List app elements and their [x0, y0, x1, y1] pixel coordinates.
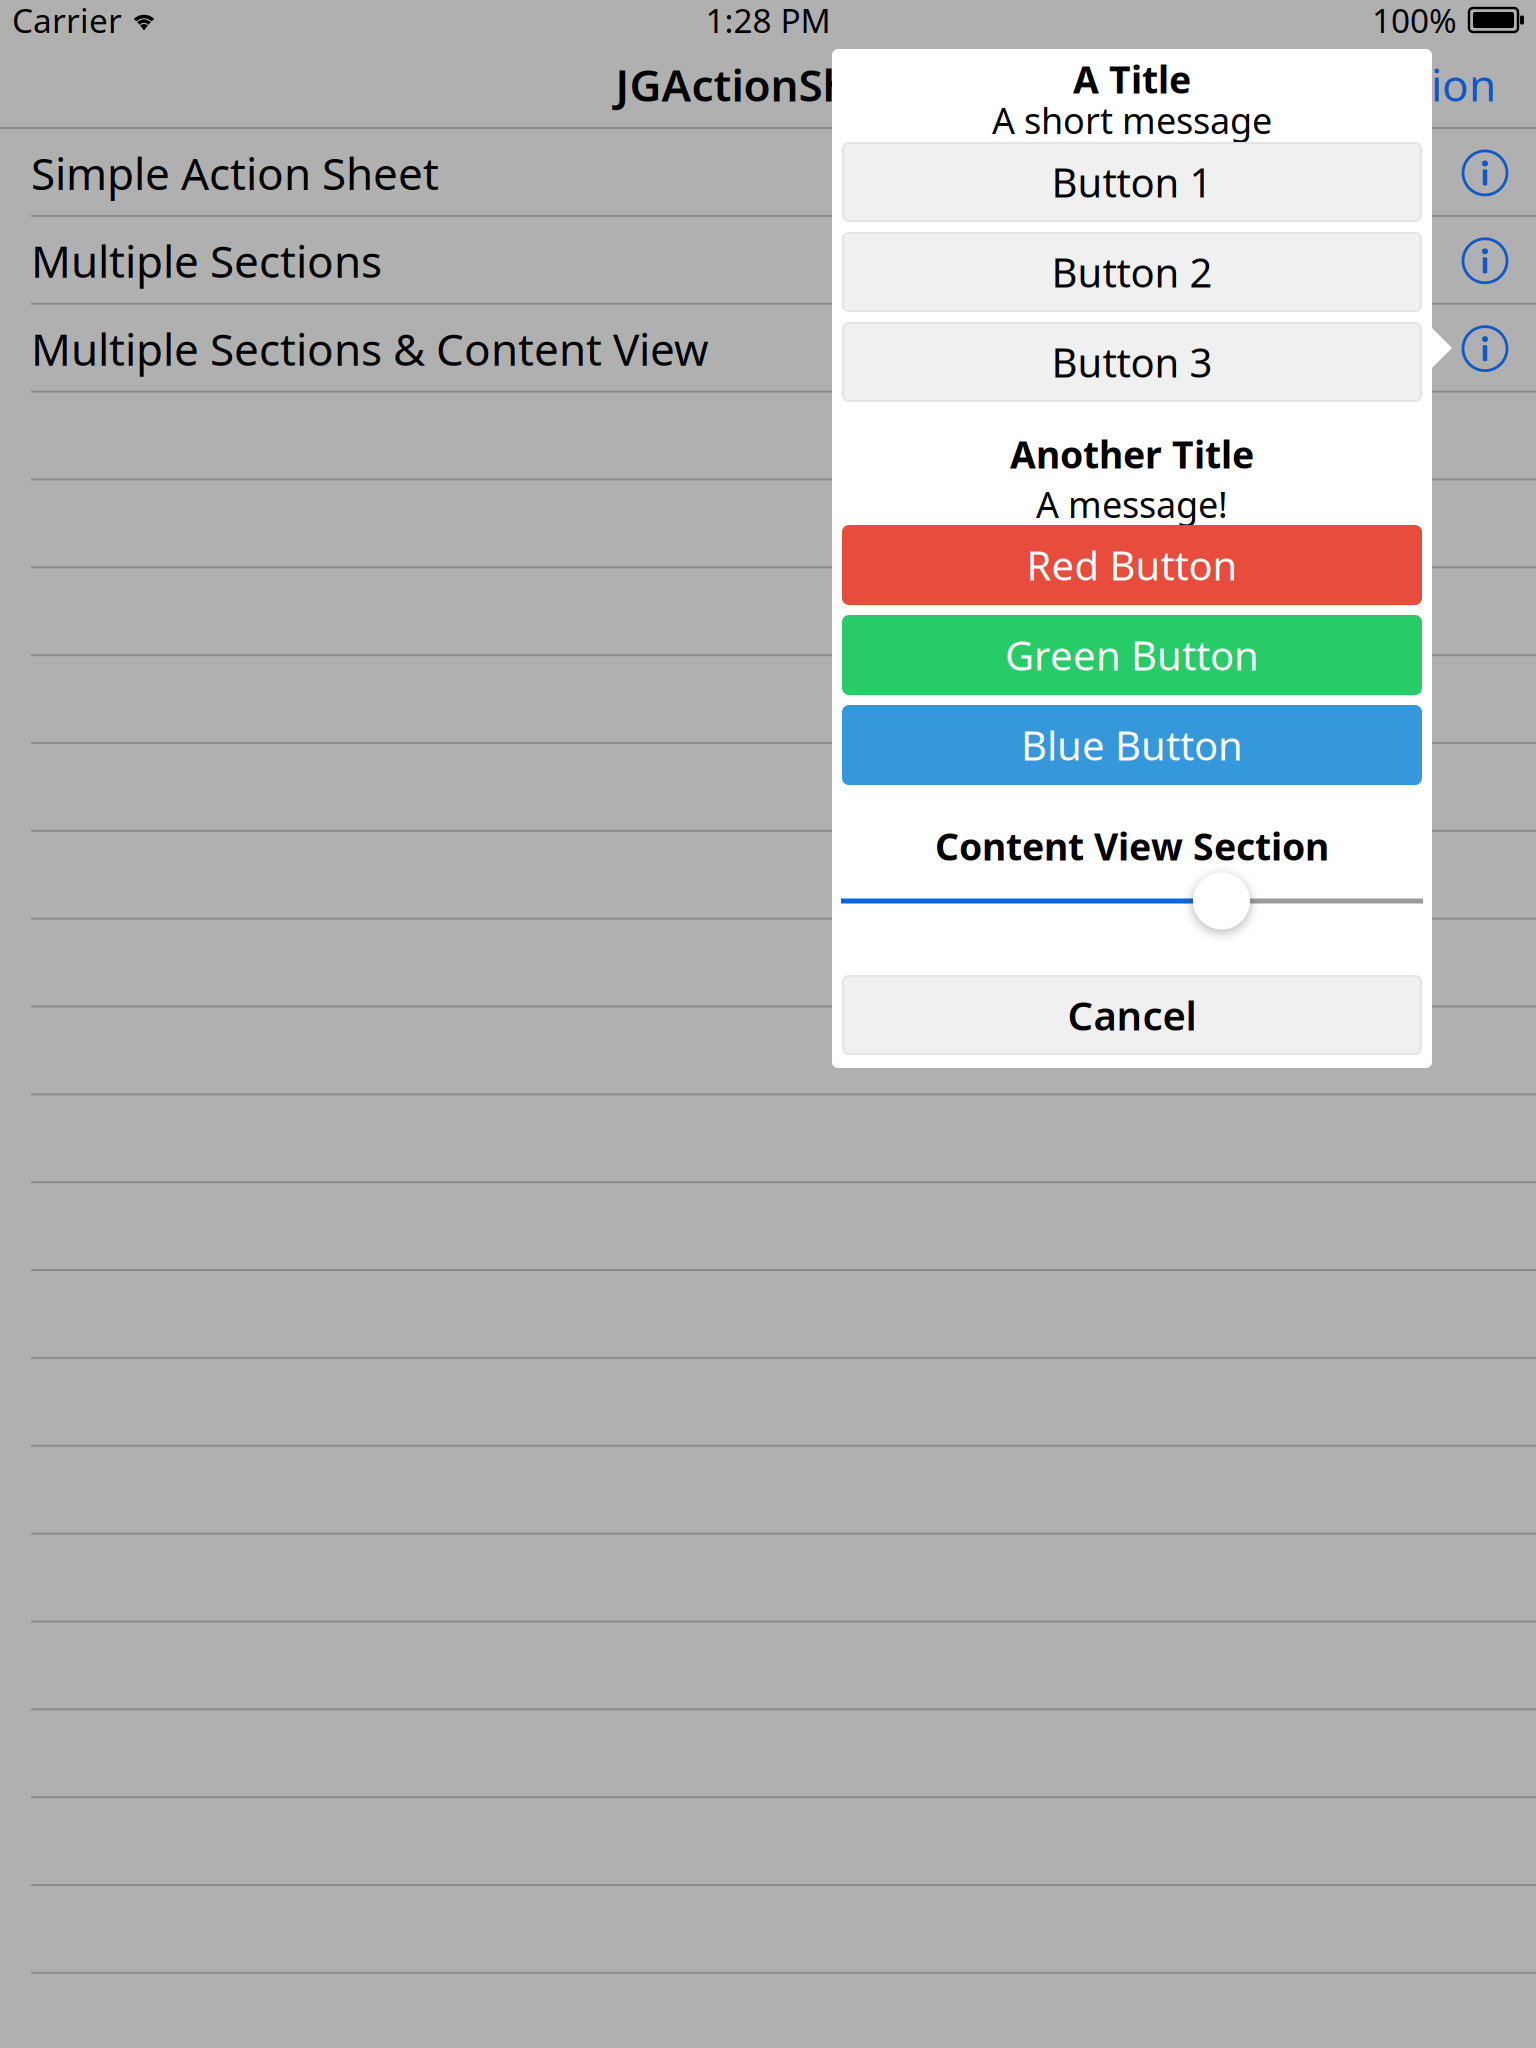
staticText: Multiple Sections & Content View — [31, 319, 709, 378]
button[interactable] — [0, 1798, 1536, 1886]
staticText: Button 1 — [1051, 155, 1212, 208]
button[interactable] — [0, 392, 1536, 480]
button[interactable]: Multiple Sections — [0, 217, 1536, 305]
button[interactable] — [0, 1535, 1536, 1622]
staticText: Multiple Sections — [31, 232, 382, 290]
button[interactable]: Multiple Sections & Content View — [0, 305, 1536, 392]
staticText: Cancel — [1067, 988, 1196, 1041]
staticText: Green Button — [1005, 628, 1259, 681]
button[interactable] — [0, 1271, 1536, 1359]
button[interactable] — [0, 1007, 1536, 1095]
staticText: A message! — [1036, 480, 1228, 528]
button[interactable] — [0, 1622, 1536, 1710]
staticText: 1:28 PM — [705, 0, 830, 42]
button[interactable] — [0, 1359, 1536, 1447]
button[interactable] — [0, 656, 1536, 744]
button[interactable]: Button 3 — [843, 323, 1421, 401]
button[interactable] — [0, 744, 1536, 832]
button[interactable]: More info — [1451, 139, 1519, 207]
staticText: Simple Action Sheet — [31, 144, 439, 202]
staticText: Blue Button — [1021, 718, 1243, 771]
staticText: Content View Section — [935, 821, 1329, 871]
button[interactable] — [0, 568, 1536, 656]
button[interactable] — [0, 1886, 1536, 1974]
button[interactable]: Blue Button — [843, 706, 1421, 784]
staticText: Another Title — [1010, 429, 1254, 479]
staticText: A short message — [992, 96, 1272, 144]
staticText: A Title — [1073, 54, 1191, 104]
staticText: Button 3 — [1051, 335, 1212, 388]
button[interactable] — [0, 1183, 1536, 1271]
button[interactable] — [0, 832, 1536, 920]
button[interactable]: Show Action — [1227, 47, 1512, 121]
staticText: Show Action — [1243, 55, 1496, 114]
staticText: Button 2 — [1051, 245, 1212, 298]
button[interactable]: Cancel — [843, 976, 1421, 1054]
button[interactable] — [0, 480, 1536, 568]
button[interactable] — [0, 1095, 1536, 1183]
button[interactable]: Simple Action Sheet — [0, 129, 1536, 217]
button[interactable]: Red Button — [843, 526, 1421, 604]
button[interactable]: Button 2 — [843, 233, 1421, 311]
button[interactable]: More info — [1451, 315, 1519, 383]
button[interactable] — [0, 920, 1536, 1007]
staticText: 100% — [1372, 0, 1457, 42]
button[interactable] — [0, 1710, 1536, 1798]
button[interactable]: Green Button — [843, 616, 1421, 694]
button[interactable] — [0, 1447, 1536, 1534]
staticText: Red Button — [1026, 538, 1237, 591]
button[interactable]: More info — [1451, 227, 1519, 295]
staticText: Carrier — [12, 0, 122, 42]
button[interactable]: Button 1 — [843, 143, 1421, 221]
staticText: JGActionSheet — [615, 55, 920, 114]
